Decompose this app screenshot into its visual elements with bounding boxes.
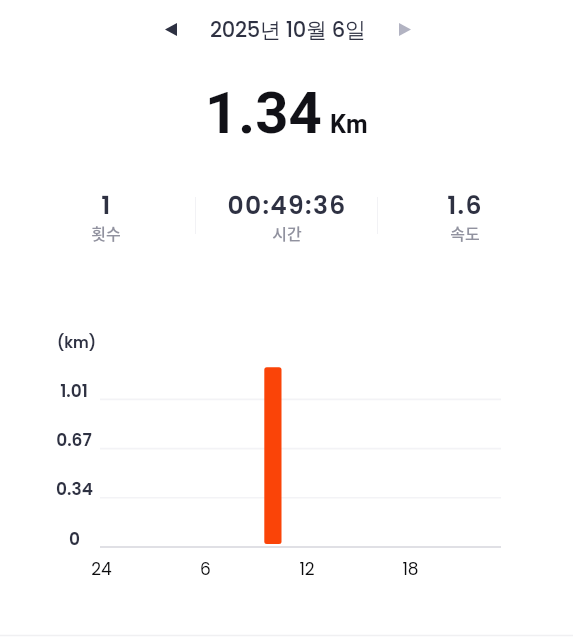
staticText: 18 — [402, 557, 419, 581]
staticText: 횟수 — [91, 221, 121, 244]
staticText: 1.34 — [205, 79, 322, 147]
button[interactable]: Previous day — [153, 11, 189, 47]
staticText: 12 — [299, 557, 315, 581]
staticText: (km) — [57, 332, 97, 353]
button[interactable]: 00:49:36 — [202, 188, 372, 246]
staticText: 0 — [69, 527, 80, 551]
staticText: 2025년 10월 6일 — [210, 15, 366, 44]
staticText: 0.34 — [56, 477, 93, 501]
staticText: Km — [330, 110, 368, 139]
staticText: 1.01 — [60, 379, 88, 403]
button[interactable]: Next day — [387, 11, 423, 47]
staticText: 24 — [91, 557, 112, 581]
staticText: 6 — [200, 557, 211, 581]
staticText: 1 — [101, 188, 112, 223]
staticText: 시간 — [272, 221, 302, 244]
staticText: 0.67 — [56, 428, 92, 452]
staticText: 00:49:36 — [227, 188, 347, 223]
staticText: 1.6 — [447, 188, 483, 223]
button[interactable]: 1 — [21, 188, 191, 246]
staticText: 속도 — [450, 221, 480, 244]
button[interactable]: 1.6 — [380, 188, 550, 246]
